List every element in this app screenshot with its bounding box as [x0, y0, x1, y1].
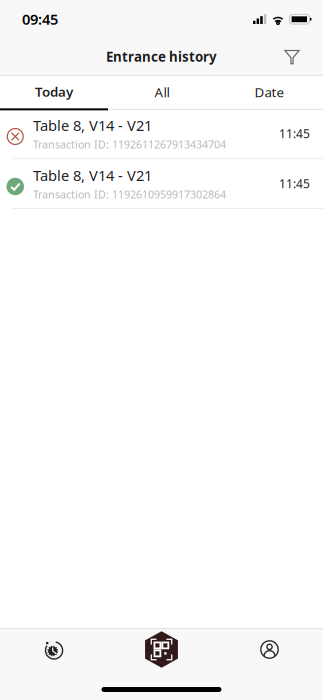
staticText: Date: [254, 83, 284, 101]
staticText: 11:45: [279, 125, 310, 141]
staticText: Today: [35, 83, 73, 100]
staticText: All: [154, 83, 169, 101]
staticText: Entrance history: [106, 48, 217, 65]
staticText: Transaction ID: 1192611267913434704: [33, 137, 226, 151]
staticText: 09:45: [22, 9, 58, 29]
button[interactable]: All: [108, 76, 216, 109]
button[interactable]: Today: [0, 76, 108, 109]
button[interactable]: Filter: [273, 41, 311, 71]
button[interactable]: Profile: [216, 629, 323, 670]
staticText: Table 8, V14 - V21: [33, 116, 152, 135]
button[interactable]: Table 8, V14 - V21: [0, 109, 323, 159]
button[interactable]: Table 8, V14 - V21: [0, 159, 323, 209]
staticText: Transaction ID: 1192610959917302864: [33, 187, 226, 201]
staticText: 11:45: [279, 175, 310, 191]
staticText: Table 8, V14 - V21: [33, 166, 152, 185]
button[interactable]: History: [0, 629, 107, 670]
button[interactable]: Scan: [107, 629, 216, 670]
button[interactable]: Date: [216, 76, 323, 109]
